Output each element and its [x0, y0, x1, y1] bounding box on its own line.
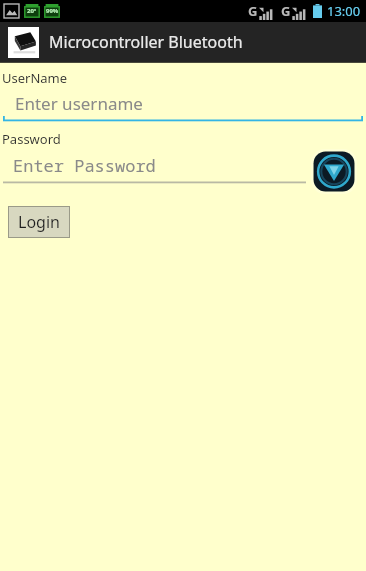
staticText: Enter username	[15, 92, 143, 115]
staticText: Password	[2, 130, 61, 148]
button[interactable]: Bluetooth device list	[311, 149, 357, 194]
staticText: 13:00	[327, 2, 361, 20]
staticText: Login	[18, 211, 60, 233]
button[interactable]: Enter Password	[3, 151, 306, 184]
button[interactable]: Login	[8, 206, 70, 238]
staticText: Enter Password	[13, 154, 156, 177]
staticText: 20°	[27, 7, 37, 15]
staticText: 99%	[46, 7, 59, 15]
staticText: G	[248, 2, 258, 20]
staticText: Microcontroller Bluetooth	[49, 31, 243, 53]
button[interactable]: Enter username	[3, 90, 363, 122]
staticText: UserName	[2, 69, 68, 87]
staticText: G	[281, 2, 291, 20]
